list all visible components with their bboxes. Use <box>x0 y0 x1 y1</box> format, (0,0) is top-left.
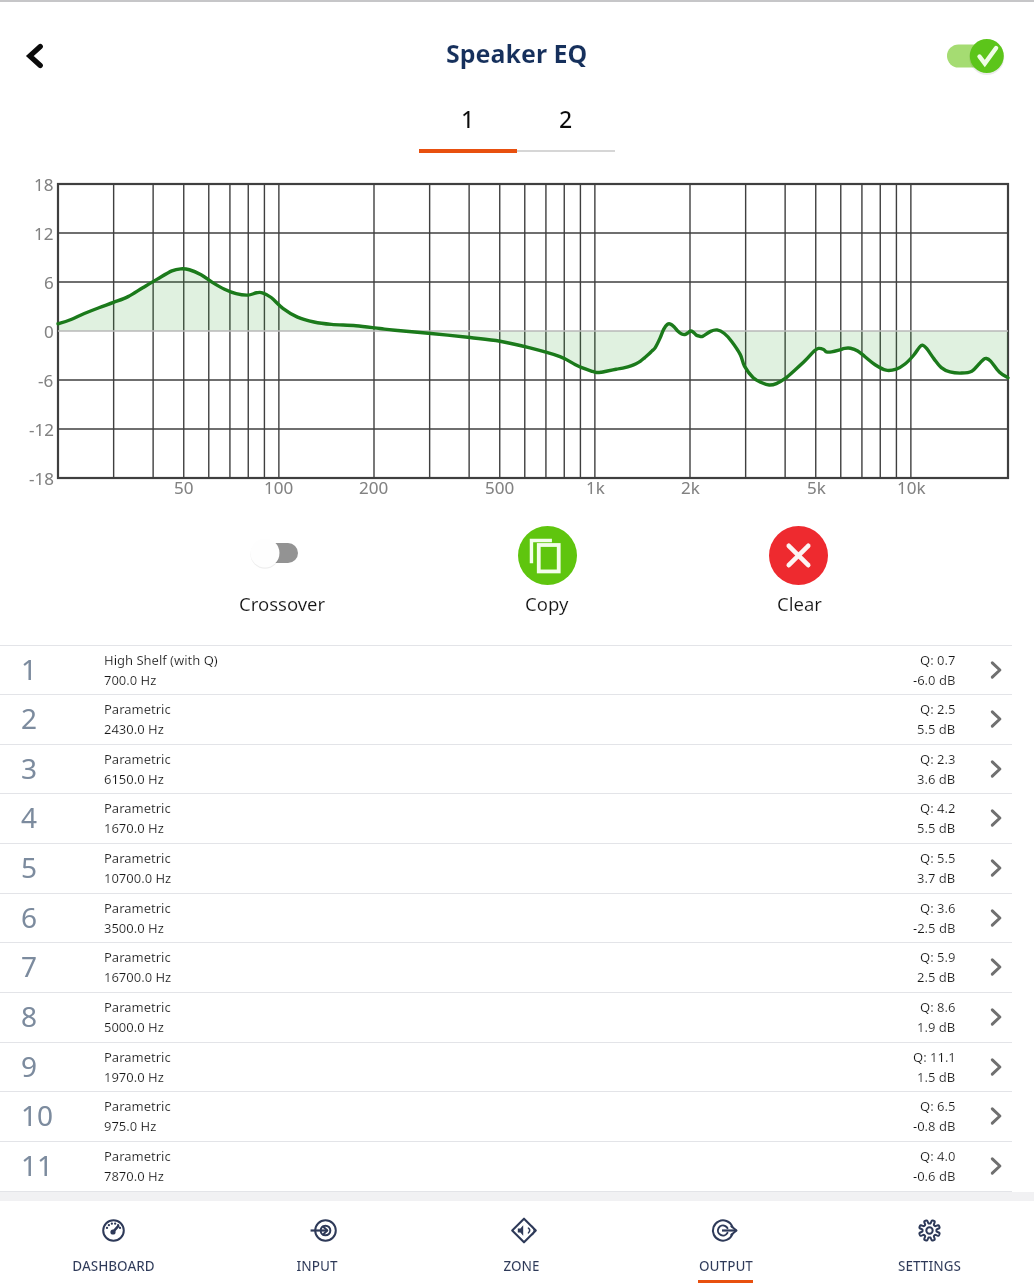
staticText: -2.5 dB <box>913 919 956 937</box>
button[interactable]: 10 <box>0 1091 1034 1141</box>
staticText: Q: 5.9 <box>920 948 956 966</box>
staticText: 1.9 dB <box>917 1018 956 1036</box>
staticText: DASHBOARD <box>72 1257 155 1275</box>
button[interactable]: DASHBOARD <box>11 1201 215 1283</box>
staticText: Q: 8.6 <box>920 998 956 1016</box>
staticText: 1k <box>586 476 605 499</box>
button[interactable]: 9 <box>0 1042 1034 1092</box>
button[interactable]: OUTPUT <box>623 1201 827 1283</box>
staticText: -0.8 dB <box>913 1117 956 1135</box>
staticText: 0 <box>44 320 54 343</box>
staticText: Parametric <box>104 1097 171 1115</box>
button[interactable]: 4 <box>0 793 1034 843</box>
staticText: Parametric <box>104 1048 171 1066</box>
staticText: Q: 4.0 <box>920 1147 956 1165</box>
staticText: 2 <box>21 699 38 737</box>
button[interactable]: ZONE <box>419 1201 623 1283</box>
staticText: Copy <box>525 591 569 616</box>
staticText: 700.0 Hz <box>104 671 157 689</box>
staticText: 2430.0 Hz <box>104 720 164 738</box>
staticText: 10700.0 Hz <box>104 869 172 887</box>
staticText: 2.5 dB <box>917 968 956 986</box>
staticText: 1.5 dB <box>917 1068 956 1086</box>
button[interactable]: Crossover <box>242 531 314 575</box>
staticText: 16700.0 Hz <box>104 968 172 986</box>
button[interactable]: Enable EQ <box>932 32 1008 82</box>
staticText: 5.5 dB <box>917 819 956 837</box>
staticText: -6.0 dB <box>913 671 956 689</box>
button[interactable]: Clear <box>769 526 828 585</box>
staticText: Q: 2.5 <box>920 700 956 718</box>
button[interactable]: 2 <box>0 694 1034 744</box>
staticText: 1 <box>21 650 38 688</box>
staticText: 5 <box>21 848 38 886</box>
button[interactable]: 3 <box>0 744 1034 794</box>
staticText: 10 <box>21 1096 54 1134</box>
staticText: Speaker EQ <box>446 36 588 70</box>
staticText: 3 <box>21 749 38 787</box>
staticText: 200 <box>359 476 389 499</box>
button[interactable]: 7 <box>0 942 1034 992</box>
staticText: 2k <box>681 476 700 499</box>
staticText: Parametric <box>104 1147 171 1165</box>
button[interactable]: 1 <box>0 645 1034 695</box>
staticText: 3500.0 Hz <box>104 919 164 937</box>
staticText: -12 <box>29 418 54 441</box>
staticText: 18 <box>34 173 54 196</box>
staticText: Q: 11.1 <box>913 1048 956 1066</box>
button[interactable]: INPUT <box>215 1201 419 1283</box>
staticText: 50 <box>174 476 194 499</box>
staticText: 3.7 dB <box>917 869 956 887</box>
staticText: 100 <box>264 476 294 499</box>
staticText: Parametric <box>104 849 171 867</box>
staticText: Q: 4.2 <box>920 799 956 817</box>
staticText: Parametric <box>104 948 171 966</box>
staticText: Parametric <box>104 750 171 768</box>
staticText: High Shelf (with Q) <box>104 651 218 669</box>
staticText: 500 <box>485 476 515 499</box>
button[interactable]: 1 <box>419 103 517 147</box>
button[interactable]: Back <box>6 28 62 84</box>
staticText: 5000.0 Hz <box>104 1018 164 1036</box>
staticText: 1670.0 Hz <box>104 819 164 837</box>
staticText: 7870.0 Hz <box>104 1167 164 1185</box>
staticText: SETTINGS <box>898 1257 961 1275</box>
staticText: -6 <box>38 369 54 392</box>
staticText: 12 <box>34 222 54 245</box>
staticText: 6 <box>44 271 54 294</box>
staticText: Parametric <box>104 899 171 917</box>
staticText: OUTPUT <box>699 1257 753 1275</box>
staticText: Parametric <box>104 700 171 718</box>
staticText: 2 <box>559 103 573 134</box>
button[interactable]: 8 <box>0 992 1034 1042</box>
button[interactable]: Copy <box>518 526 577 585</box>
staticText: 1 <box>461 103 475 134</box>
button[interactable]: 2 <box>517 103 615 147</box>
staticText: 3.6 dB <box>917 770 956 788</box>
staticText: Q: 2.3 <box>920 750 956 768</box>
staticText: Parametric <box>104 998 171 1016</box>
staticText: ZONE <box>503 1257 540 1275</box>
staticText: Q: 6.5 <box>920 1097 956 1115</box>
staticText: 11 <box>21 1146 54 1184</box>
staticText: 5k <box>807 476 826 499</box>
staticText: 10k <box>897 476 926 499</box>
staticText: Q: 0.7 <box>920 651 956 669</box>
staticText: -18 <box>29 467 54 490</box>
staticText: 4 <box>21 798 38 836</box>
staticText: INPUT <box>296 1257 338 1275</box>
staticText: 6150.0 Hz <box>104 770 164 788</box>
button[interactable]: 5 <box>0 843 1034 893</box>
button[interactable]: 6 <box>0 893 1034 943</box>
staticText: 9 <box>21 1047 38 1085</box>
button[interactable]: SETTINGS <box>827 1201 1031 1283</box>
staticText: 6 <box>21 898 38 936</box>
staticText: -0.6 dB <box>913 1167 956 1185</box>
staticText: 7 <box>21 947 38 985</box>
button[interactable]: 11 <box>0 1141 1034 1191</box>
staticText: 8 <box>21 997 38 1035</box>
staticText: Parametric <box>104 799 171 817</box>
staticText: Clear <box>777 591 822 616</box>
staticText: 975.0 Hz <box>104 1117 157 1135</box>
staticText: Crossover <box>239 591 326 616</box>
